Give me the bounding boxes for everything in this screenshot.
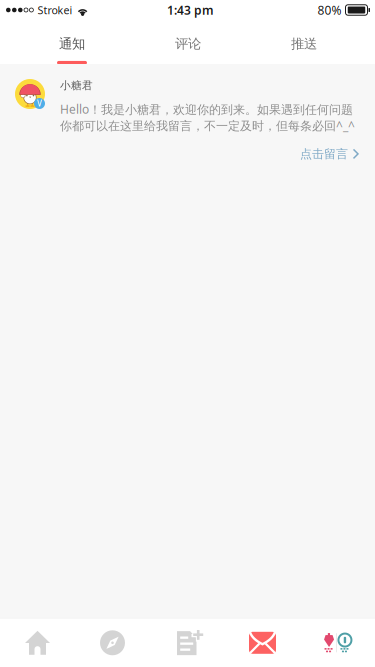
- button[interactable]: 通知: [14, 20, 130, 64]
- button[interactable]: V: [0, 79, 375, 161]
- button[interactable]: 推送: [246, 20, 362, 64]
- button[interactable]: Discover: [75, 619, 150, 667]
- staticText: 推送: [291, 36, 317, 52]
- staticText: 点击留言: [300, 146, 348, 161]
- button[interactable]: 评论: [130, 20, 246, 64]
- staticText: Strokei: [37, 3, 72, 17]
- button[interactable]: Messages: [225, 619, 300, 667]
- staticText: Hello！我是小糖君，欢迎你的到来。如果遇到任何问题你都可以在这里给我留言，不…: [60, 101, 355, 133]
- button[interactable]: Home: [0, 619, 75, 667]
- button[interactable]: Profile: [300, 619, 375, 667]
- staticText: 小糖君: [60, 79, 93, 92]
- staticText: 通知: [59, 36, 85, 52]
- button[interactable]: New Post: [150, 619, 225, 667]
- staticText: 评论: [175, 36, 201, 52]
- staticText: V: [37, 98, 42, 109]
- staticText: 80%: [317, 2, 341, 18]
- button[interactable]: 点击留言: [300, 146, 360, 161]
- staticText: 1:43 pm: [167, 2, 214, 18]
